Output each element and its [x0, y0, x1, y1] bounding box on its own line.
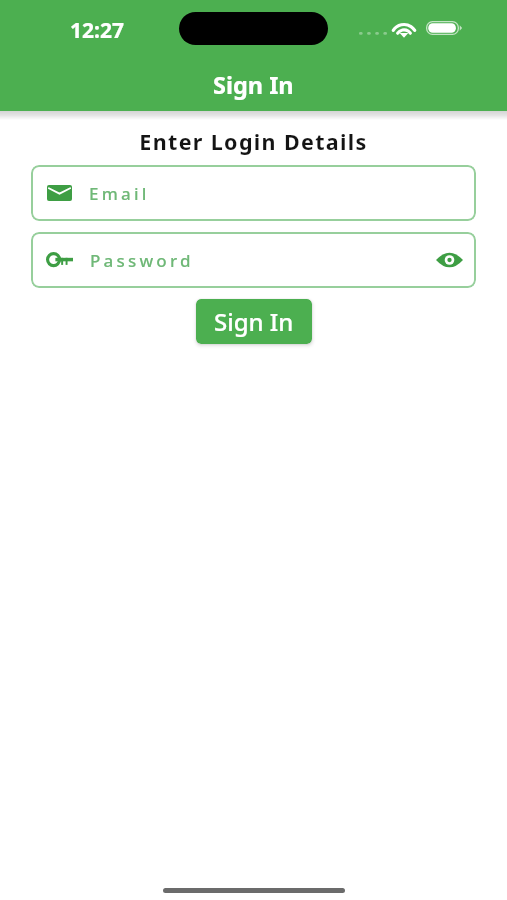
staticText: Enter Login Details — [0, 127, 507, 156]
staticText: Password — [90, 249, 434, 272]
button[interactable]: Sign In — [196, 299, 312, 344]
button[interactable]: Show password — [434, 245, 464, 275]
staticText: 12:27 — [70, 16, 124, 45]
button[interactable]: Email — [31, 165, 476, 221]
staticText: Sign In — [213, 69, 294, 101]
button[interactable]: Password — [31, 232, 476, 288]
staticText: Email — [89, 182, 150, 205]
staticText: Sign In — [214, 305, 294, 338]
